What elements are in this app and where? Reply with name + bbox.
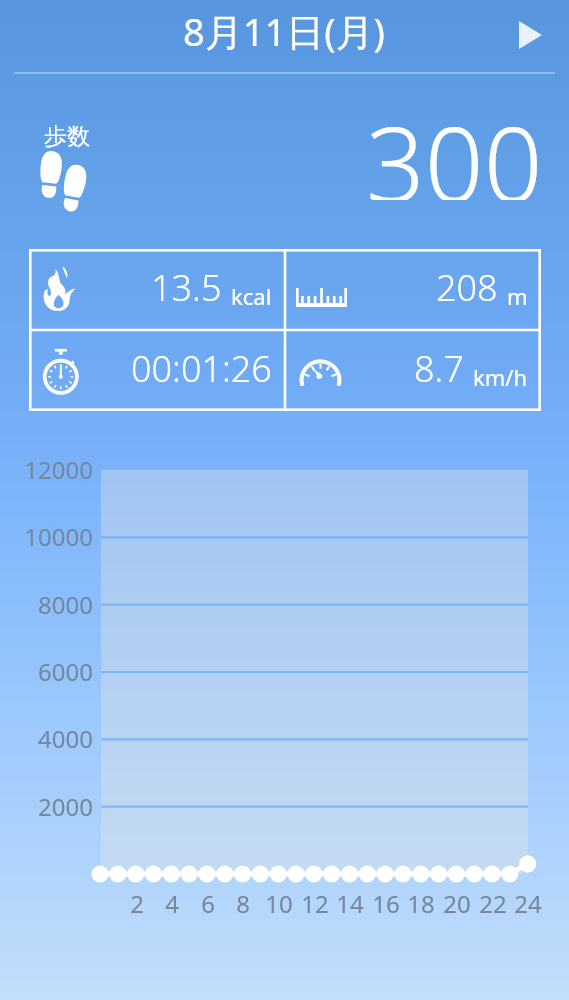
staticText: 2000	[0, 790, 93, 823]
button[interactable]: 8.7	[285, 330, 541, 411]
staticText: m	[507, 281, 528, 311]
button[interactable]: 00:01:26	[29, 330, 285, 411]
staticText: 4	[150, 887, 194, 920]
staticText: 14	[328, 887, 372, 920]
staticText: 24	[506, 887, 550, 920]
staticText: kcal	[231, 281, 272, 311]
staticText: 00:01:26	[131, 344, 272, 393]
staticText: 8.7	[414, 344, 464, 393]
staticText: 8月11日(月)	[183, 5, 386, 57]
staticText: 300	[366, 92, 543, 200]
staticText: 208	[436, 263, 498, 312]
staticText: 4000	[0, 722, 93, 755]
button[interactable]: 208	[285, 249, 541, 330]
button[interactable]: Next day	[506, 11, 554, 59]
staticText: km/h	[473, 362, 528, 392]
staticText: 12000	[0, 453, 93, 486]
staticText: 18	[399, 887, 443, 920]
button[interactable]: 13.5	[29, 249, 285, 330]
button[interactable]: 歩数	[28, 112, 108, 217]
staticText: 13.5	[151, 263, 222, 312]
button[interactable]: Daily step chart	[101, 470, 528, 874]
staticText: 6000	[0, 655, 93, 688]
staticText: 歩数	[44, 122, 90, 151]
staticText: 12	[293, 887, 337, 920]
staticText: 6	[186, 887, 230, 920]
staticText: 16	[364, 887, 408, 920]
staticText: 22	[471, 887, 515, 920]
staticText: 2	[115, 887, 159, 920]
staticText: 20	[435, 887, 479, 920]
staticText: 10	[257, 887, 301, 920]
staticText: 8000	[0, 588, 93, 621]
staticText: 8	[221, 887, 265, 920]
staticText: 10000	[0, 520, 93, 553]
